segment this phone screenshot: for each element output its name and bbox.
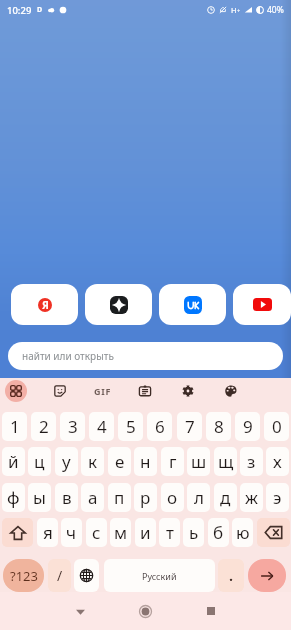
staticText: Я xyxy=(42,298,49,312)
staticText: ?123 xyxy=(10,567,38,585)
button[interactable]: VK xyxy=(159,284,226,325)
staticText: 2 xyxy=(39,415,49,438)
staticText: 40% xyxy=(267,4,284,16)
button[interactable]: х xyxy=(266,447,289,476)
button[interactable]: Shift xyxy=(2,518,33,547)
staticText: 8 xyxy=(214,415,224,438)
staticText: н xyxy=(140,450,151,473)
button[interactable]: ы xyxy=(28,483,51,512)
button[interactable]: а xyxy=(81,483,104,512)
staticText: ч xyxy=(66,521,77,544)
button[interactable]: / xyxy=(48,559,71,592)
staticText: найти или открыть xyxy=(22,349,114,363)
button[interactable]: Recent apps xyxy=(196,596,226,626)
button[interactable]: щ xyxy=(214,447,237,476)
button[interactable]: Settings xyxy=(177,380,199,402)
button[interactable]: 1 xyxy=(2,412,27,441)
button[interactable]: Clipboard xyxy=(134,380,156,402)
button[interactable]: Home xyxy=(130,596,160,626)
staticText: + xyxy=(237,7,241,14)
button[interactable]: о xyxy=(161,483,184,512)
button[interactable]: р xyxy=(134,483,157,512)
button[interactable]: ц xyxy=(28,447,51,476)
button[interactable]: Apps xyxy=(5,380,27,402)
staticText: й xyxy=(8,450,19,473)
staticText: щ xyxy=(218,450,234,473)
button[interactable]: 9 xyxy=(235,412,260,441)
staticText: р xyxy=(140,486,151,509)
staticText: х xyxy=(273,450,282,473)
staticText: о xyxy=(167,486,178,509)
button[interactable]: е xyxy=(108,447,131,476)
button[interactable]: Backspace xyxy=(257,518,290,547)
button[interactable]: г xyxy=(161,447,184,476)
staticText: э xyxy=(273,486,282,509)
button[interactable]: Yandex xyxy=(11,284,78,325)
staticText: 9 xyxy=(243,415,253,438)
staticText: с xyxy=(92,521,101,544)
button[interactable]: 8 xyxy=(206,412,231,441)
button[interactable]: 5 xyxy=(118,412,143,441)
button[interactable]: ж xyxy=(240,483,263,512)
button[interactable]: Alice xyxy=(85,284,152,325)
button[interactable]: э xyxy=(266,483,289,512)
button[interactable]: Period xyxy=(218,559,244,592)
button[interactable]: ю xyxy=(232,518,253,547)
staticText: ф xyxy=(7,486,20,509)
button[interactable]: Stickers xyxy=(49,380,71,402)
staticText: Русский xyxy=(142,570,177,582)
button[interactable]: ш xyxy=(187,447,210,476)
button[interactable]: я xyxy=(37,518,58,547)
staticText: м xyxy=(114,521,128,544)
button[interactable]: Change language xyxy=(74,559,99,592)
button[interactable]: ч xyxy=(61,518,82,547)
button[interactable]: п xyxy=(108,483,131,512)
button[interactable]: найти или открыть xyxy=(8,342,283,370)
button[interactable]: д xyxy=(214,483,237,512)
staticText: 10:29 xyxy=(7,4,32,17)
button[interactable]: 2 xyxy=(31,412,56,441)
button[interactable]: л xyxy=(187,483,210,512)
button[interactable]: ?123 xyxy=(3,559,44,592)
button[interactable]: б xyxy=(208,518,229,547)
staticText: я xyxy=(43,521,53,544)
button[interactable]: т xyxy=(159,518,180,547)
button[interactable]: с xyxy=(86,518,107,547)
button[interactable]: 0 xyxy=(264,412,289,441)
button[interactable]: к xyxy=(81,447,104,476)
staticText: ц xyxy=(34,450,45,473)
button[interactable]: Enter xyxy=(248,559,286,592)
staticText: ы xyxy=(33,486,46,509)
button[interactable]: GIF xyxy=(90,380,116,402)
staticText: H xyxy=(231,5,237,15)
staticText: ю xyxy=(236,521,250,544)
staticText: л xyxy=(194,486,204,509)
button[interactable]: Back xyxy=(65,596,95,626)
button[interactable]: 7 xyxy=(177,412,202,441)
staticText: е xyxy=(115,450,125,473)
button[interactable]: у xyxy=(55,447,78,476)
staticText: з xyxy=(247,450,256,473)
staticText: 7 xyxy=(185,415,195,438)
button[interactable]: Русский xyxy=(104,559,215,592)
button[interactable]: м xyxy=(110,518,131,547)
staticText: 1 xyxy=(10,415,20,438)
staticText: 0 xyxy=(272,415,282,438)
button[interactable]: YouTube xyxy=(233,284,291,325)
button[interactable]: 6 xyxy=(147,412,172,441)
button[interactable]: й xyxy=(2,447,25,476)
button[interactable]: ь xyxy=(183,518,204,547)
staticText: т xyxy=(166,521,174,544)
button[interactable]: ф xyxy=(2,483,25,512)
button[interactable]: в xyxy=(55,483,78,512)
staticText: г xyxy=(169,450,177,473)
button[interactable]: и xyxy=(135,518,156,547)
staticText: ж xyxy=(245,486,258,509)
staticText: 5 xyxy=(126,415,136,438)
button[interactable]: н xyxy=(134,447,157,476)
button[interactable]: 3 xyxy=(60,412,85,441)
button[interactable]: 4 xyxy=(89,412,114,441)
button[interactable]: з xyxy=(240,447,263,476)
staticText: GIF xyxy=(94,385,112,397)
button[interactable]: Theme xyxy=(220,380,242,402)
